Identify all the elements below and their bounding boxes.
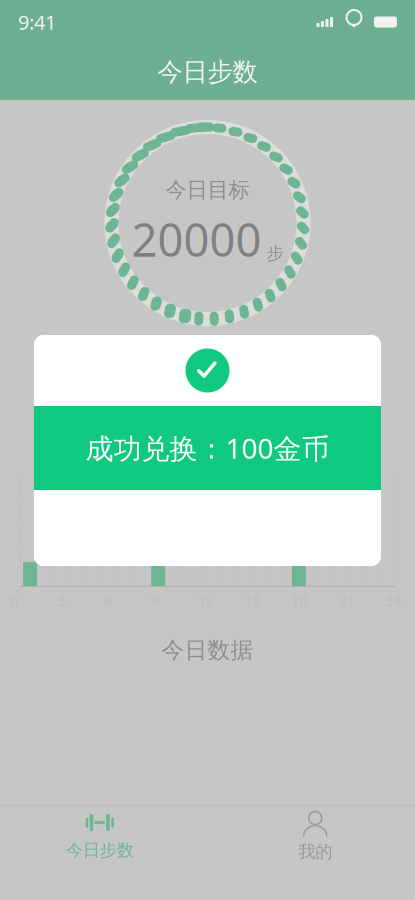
staticText: 我的 [298, 841, 332, 862]
staticText: 步 [266, 243, 283, 264]
staticText: 20000 [131, 209, 261, 269]
staticText: 今日步数 [66, 840, 134, 861]
staticText: 今日数据 [161, 636, 253, 664]
button[interactable]: 今日步数 [0, 806, 207, 868]
button[interactable]: 成功兑换：100金币 [34, 335, 381, 566]
staticText: 9:41 [18, 9, 56, 35]
button[interactable]: 我的 [207, 806, 415, 868]
staticText: 今日目标 [165, 177, 249, 203]
staticText: 成功兑换：100金币 [85, 429, 329, 467]
staticText: 今日步数 [157, 56, 257, 87]
